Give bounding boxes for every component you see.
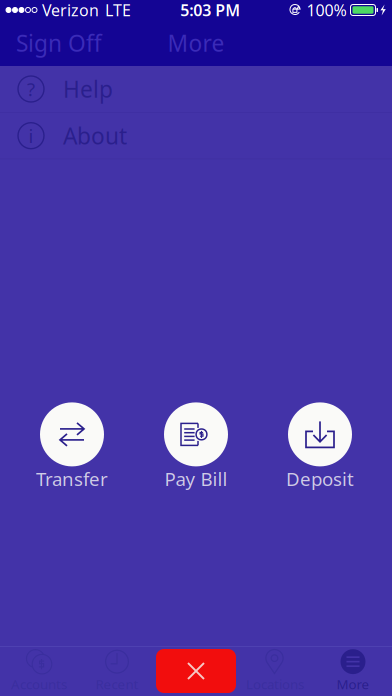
button[interactable]: Transfer (36, 402, 108, 491)
staticText: 100% (306, 0, 346, 21)
staticText: Help (63, 74, 113, 104)
button[interactable]: i (0, 113, 392, 159)
staticText: About (63, 121, 127, 151)
button[interactable]: ? (0, 66, 392, 112)
staticText: i (28, 123, 33, 148)
button[interactable]: Sign Off (0, 18, 118, 68)
button[interactable]: More (314, 646, 392, 696)
button[interactable]: Close (156, 646, 236, 696)
staticText: Transfer (36, 466, 108, 491)
staticText: ? (27, 77, 35, 101)
staticText: LTE (105, 0, 131, 21)
staticText: Pay Bill (164, 466, 227, 491)
staticText: Deposit (286, 466, 354, 491)
staticText: Verizon (42, 0, 99, 21)
staticText: More (336, 675, 369, 693)
button[interactable]: Pay Bill (164, 402, 228, 491)
staticText: Sign Off (16, 28, 102, 58)
staticText: 5:03 PM (180, 0, 240, 21)
staticText: More (167, 28, 224, 58)
button[interactable]: Deposit (286, 402, 354, 491)
